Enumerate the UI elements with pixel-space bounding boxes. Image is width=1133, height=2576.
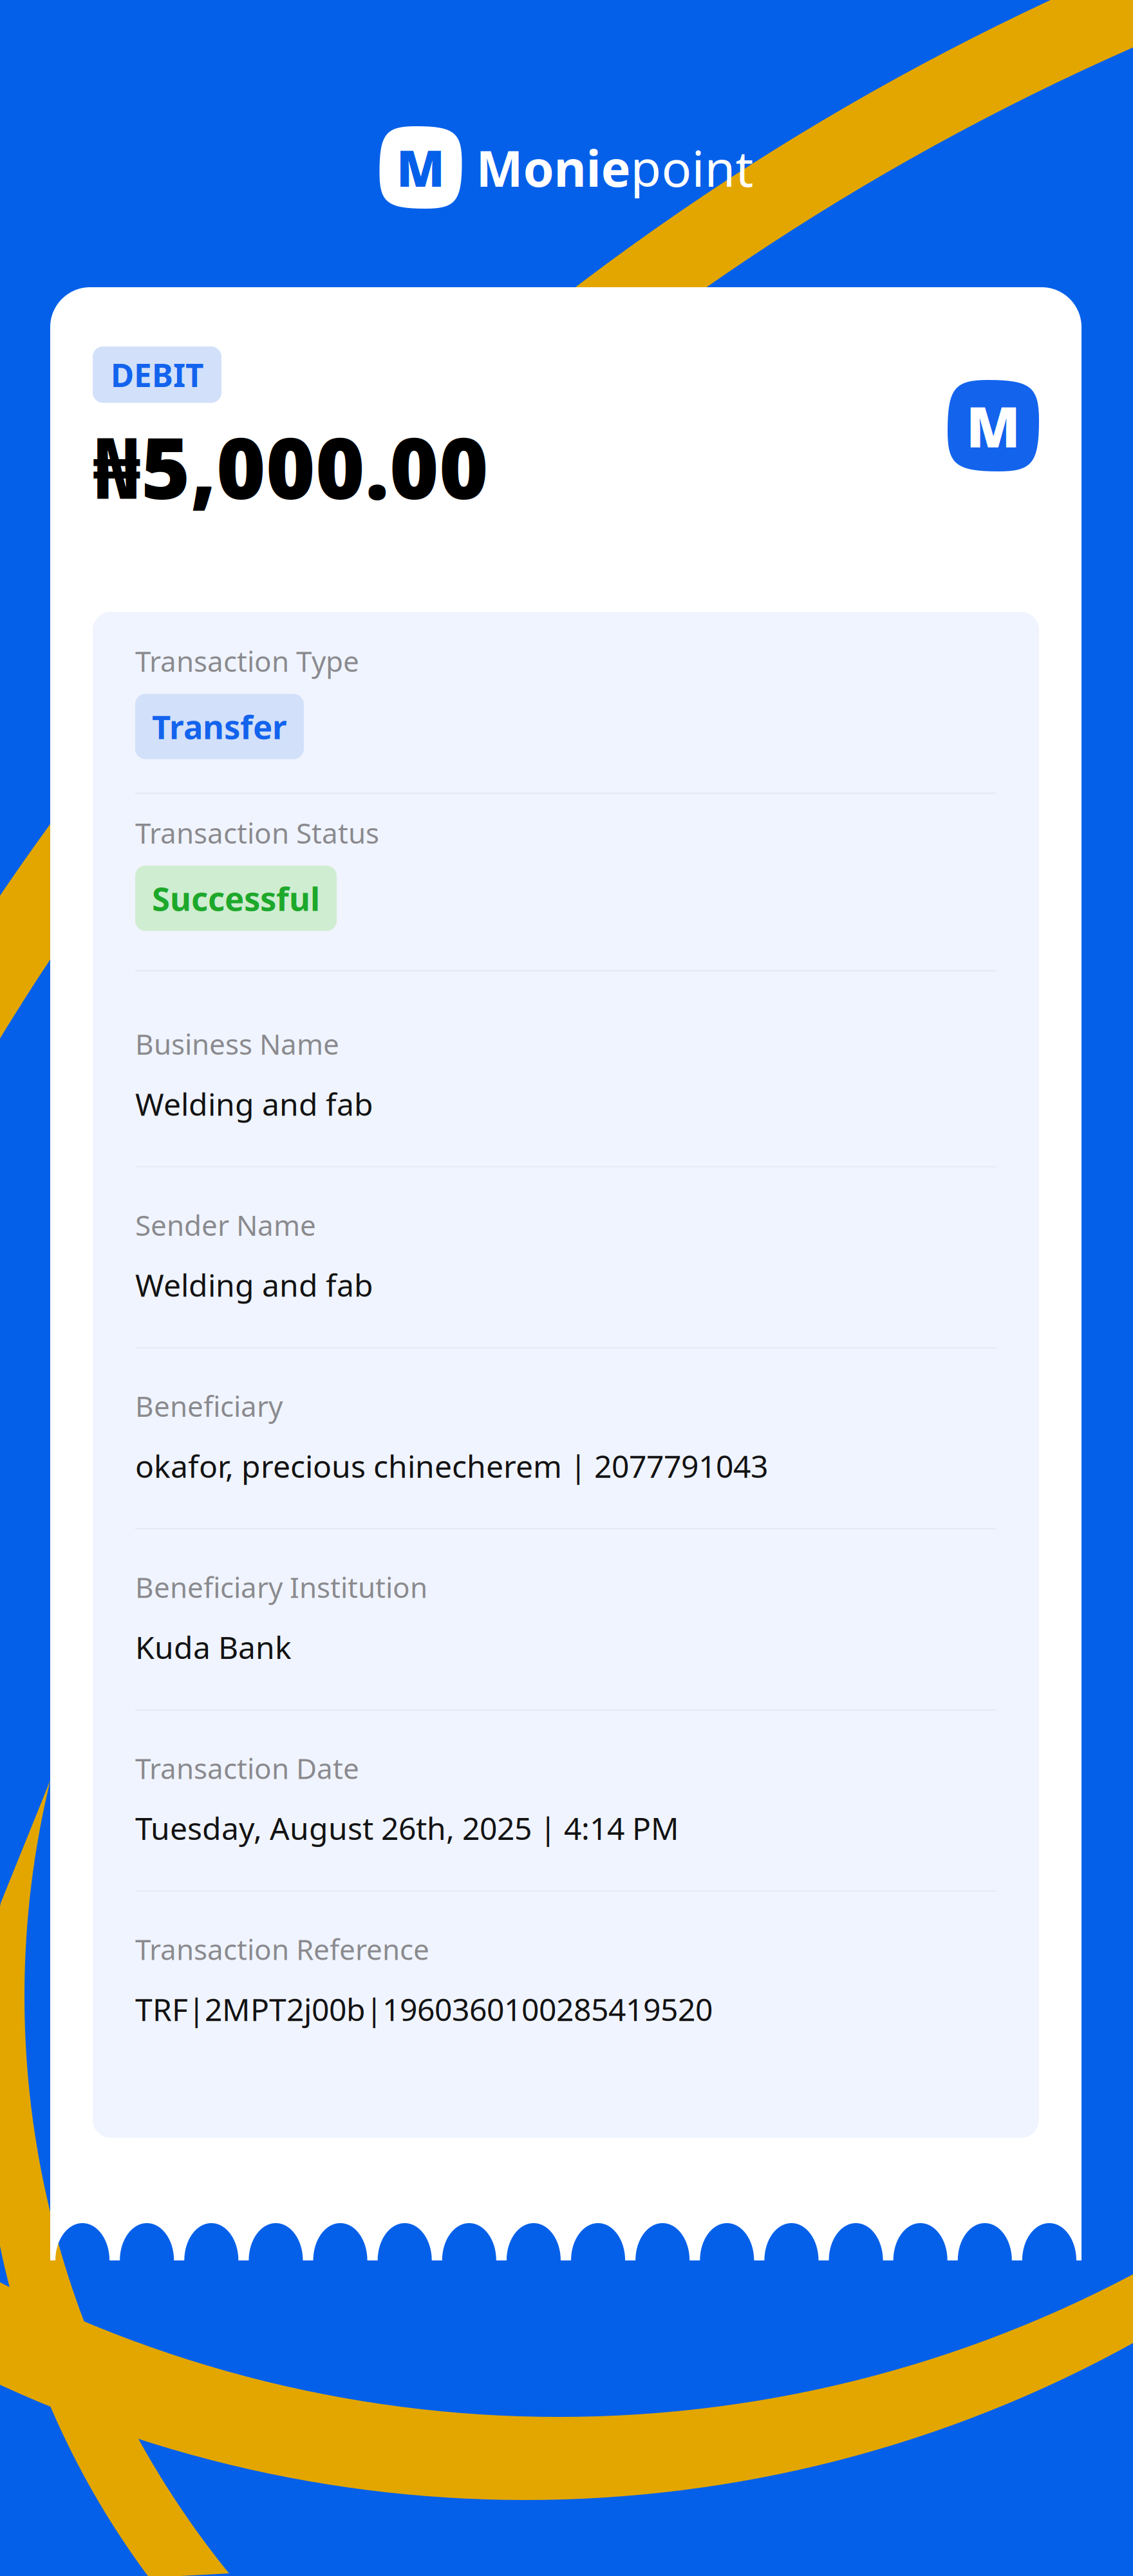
staticText: Successful [152, 877, 320, 920]
staticText: Monie [476, 134, 631, 201]
staticText: Transaction Type [135, 642, 359, 680]
staticText: Beneficiary Institution [135, 1568, 427, 1606]
staticText: Sender Name [135, 1206, 316, 1244]
staticText: DEBIT [111, 354, 203, 396]
staticText: okafor, precious chinecherem | 207779104… [135, 1445, 768, 1486]
staticText: Welding and fab [135, 1083, 373, 1124]
staticText: Kuda Bank [135, 1626, 292, 1667]
staticText: Tuesday, August 26th, 2025 | 4:14 PM [135, 1807, 679, 1848]
staticText: Transfer [152, 705, 287, 748]
staticText: ₦5,000.00 [93, 411, 489, 522]
staticText: Welding and fab [135, 1264, 373, 1305]
staticText: Transaction Reference [135, 1930, 429, 1968]
staticText: M [397, 134, 445, 201]
staticText: TRF|2MPT2j00b|1960360100285419520 [135, 1988, 713, 2030]
staticText: point [631, 134, 754, 201]
button[interactable]: Moniepoint [948, 346, 1039, 471]
staticText: Beneficiary [135, 1387, 283, 1425]
staticText: Business Name [135, 1025, 339, 1063]
staticText: Transaction Status [135, 814, 379, 851]
staticText: M [966, 389, 1020, 463]
button[interactable]: M [379, 126, 754, 209]
staticText: Transaction Date [135, 1749, 359, 1787]
